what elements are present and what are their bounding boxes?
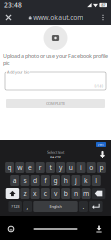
button[interactable]: f [41,175,50,186]
button[interactable]: ?123 [8,201,22,212]
button[interactable]: Close [3,12,14,23]
staticText: , [27,202,29,211]
button[interactable]: l [92,175,101,186]
staticText: g [53,176,57,185]
staticText: . [82,202,84,211]
button[interactable]: q [5,162,14,173]
button[interactable]: Paste [96,142,106,147]
staticText: COMPLETE [46,101,65,106]
staticText: k [84,176,88,185]
staticText: e [28,163,32,172]
staticText: j [75,176,77,185]
button[interactable]: More options [98,12,108,23]
staticText: 23:48 [4,1,22,9]
button[interactable]: COMPLETE [6,99,105,108]
staticText: v [54,189,57,198]
staticText: ?123 [11,204,19,209]
staticText: d [33,176,37,185]
button[interactable]: Voice input [100,151,105,158]
button[interactable]: Emoji [8,226,14,232]
button[interactable]: w [15,162,24,173]
button[interactable]: English [33,201,78,212]
button[interactable]: u [66,162,75,173]
staticText: a [13,176,17,185]
staticText: b [64,189,68,198]
button[interactable]: Shift [6,188,19,199]
button[interactable]: j [71,175,80,186]
staticText: t [49,163,51,172]
button[interactable]: s [20,175,29,186]
button[interactable]: r [36,162,45,173]
button[interactable]: e [25,162,34,173]
staticText: y [59,163,62,172]
staticText: r [39,163,42,172]
button[interactable]: o [87,162,96,173]
button[interactable]: p [97,162,106,173]
button[interactable]: n [71,188,80,199]
button[interactable]: m [82,188,91,199]
button[interactable]: z [20,188,29,199]
button[interactable]: Backspace [92,188,105,199]
staticText: 87 [101,2,105,8]
button[interactable]: t [46,162,55,173]
staticText: o [89,163,93,172]
staticText: Add your bio [7,69,29,75]
button[interactable]: h [61,175,70,186]
staticText: p [99,163,103,172]
staticText: Select text [47,149,64,155]
staticText: 0/140 [94,85,103,88]
staticText: Upload a photo or use your Facebook prof… [3,52,108,67]
button[interactable]: c [41,188,50,199]
button[interactable]: d [31,175,40,186]
button[interactable]: , [23,201,32,212]
staticText: h [64,176,68,185]
staticText: n [74,189,78,198]
staticText: z [23,189,26,198]
button[interactable]: v [51,188,60,199]
staticText: www.okaut.com [33,13,83,22]
staticText: w [17,163,22,172]
staticText: u [69,163,73,172]
staticText: c [44,189,47,198]
staticText: PASTE [50,155,61,160]
button[interactable]: i [76,162,85,173]
staticText: f [44,176,46,185]
staticText: x [33,189,37,198]
button[interactable]: k [82,175,91,186]
staticText: q [8,163,12,172]
button[interactable]: Download [96,225,102,232]
button[interactable]: Enter [89,201,103,212]
button[interactable]: x [31,188,40,199]
button[interactable]: g [51,175,60,186]
button[interactable]: y [56,162,65,173]
button[interactable]: . [79,201,88,212]
staticText: paste [97,143,104,146]
staticText: l [95,176,97,185]
staticText: m [83,189,89,198]
staticText: s [23,176,26,185]
staticText: English [49,204,61,209]
button[interactable]: a [10,175,19,186]
button[interactable]: b [61,188,70,199]
staticText: i [80,163,82,172]
